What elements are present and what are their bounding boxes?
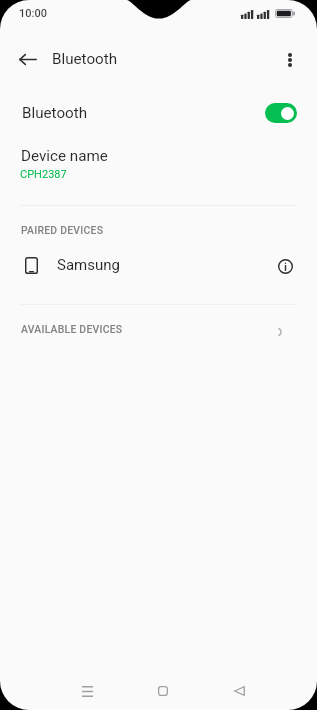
button[interactable]: More options (270, 40, 310, 80)
button[interactable]: Recent apps (69, 673, 105, 709)
button[interactable]: Samsung (0, 242, 317, 290)
staticText: CPH2387 (20, 168, 67, 181)
button[interactable]: Bluetooth on (265, 103, 297, 123)
button[interactable]: Device name (0, 140, 317, 188)
staticText: Bluetooth (52, 50, 118, 68)
button[interactable]: Navigate up (8, 39, 48, 79)
button[interactable]: Device details (273, 254, 298, 279)
staticText: Samsung (57, 256, 120, 274)
staticText: 10:00 (19, 7, 47, 20)
button[interactable]: Home (145, 673, 181, 709)
staticText: Bluetooth (22, 104, 88, 122)
staticText: PAIRED DEVICES (21, 224, 104, 236)
staticText: Device name (21, 147, 108, 165)
staticText: AVAILABLE DEVICES (21, 323, 123, 335)
button[interactable]: Back (221, 673, 257, 709)
button[interactable]: Bluetooth (0, 91, 317, 135)
